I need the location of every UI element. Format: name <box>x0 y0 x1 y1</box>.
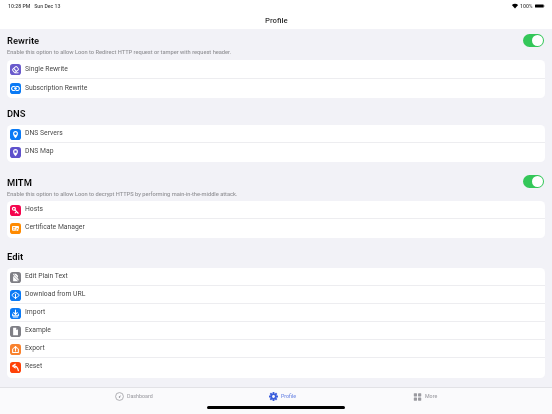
button[interactable]: Single Rewrite <box>7 60 545 79</box>
button[interactable]: Import <box>7 304 545 322</box>
staticText: 100% <box>520 3 533 9</box>
staticText: Edit <box>7 251 24 262</box>
staticText: Enable this option to allow Loon to decr… <box>7 191 238 198</box>
staticText: Rewrite <box>7 35 40 46</box>
staticText: Subscription Rewrite <box>25 84 88 92</box>
staticText: Edit Plain Text <box>25 272 68 280</box>
staticText: Hosts <box>25 205 43 213</box>
staticText: Single Rewrite <box>25 65 68 73</box>
button[interactable]: Reset <box>7 358 545 376</box>
button[interactable]: Enable MITM <box>523 175 544 188</box>
staticText: Enable this option to allow Loon to Redi… <box>7 49 232 56</box>
button[interactable]: Example <box>7 322 545 340</box>
button[interactable]: DNS Map <box>7 143 545 161</box>
button[interactable]: Subscription Rewrite <box>7 79 545 98</box>
button[interactable]: Profile <box>269 389 297 403</box>
staticText: Profile <box>281 393 297 399</box>
button[interactable]: Certificate Manager <box>7 219 545 237</box>
staticText: DNS Map <box>25 147 54 155</box>
staticText: DNS Servers <box>25 129 63 137</box>
staticText: Profile <box>265 16 288 25</box>
staticText: MITM <box>7 177 32 188</box>
staticText: Import <box>25 308 46 316</box>
button[interactable]: Enable Rewrite <box>523 34 544 47</box>
staticText: Dashboard <box>127 393 153 399</box>
staticText: DNS <box>7 108 26 119</box>
button[interactable]: Dashboard <box>115 389 153 403</box>
button[interactable]: Hosts <box>7 201 545 219</box>
button[interactable]: DNS Servers <box>7 125 545 143</box>
staticText: Reset <box>25 362 43 370</box>
staticText: Download from URL <box>25 290 86 298</box>
staticText: Export <box>25 344 45 352</box>
button[interactable]: Export <box>7 340 545 358</box>
staticText: More <box>425 393 438 399</box>
staticText: Certificate Manager <box>25 223 85 231</box>
button[interactable]: Download from URL <box>7 286 545 304</box>
button[interactable]: Edit Plain Text <box>7 268 545 286</box>
staticText: 10:28 PM Sun Dec 13 <box>8 3 61 9</box>
staticText: Example <box>25 326 51 334</box>
button[interactable]: More <box>413 389 438 403</box>
